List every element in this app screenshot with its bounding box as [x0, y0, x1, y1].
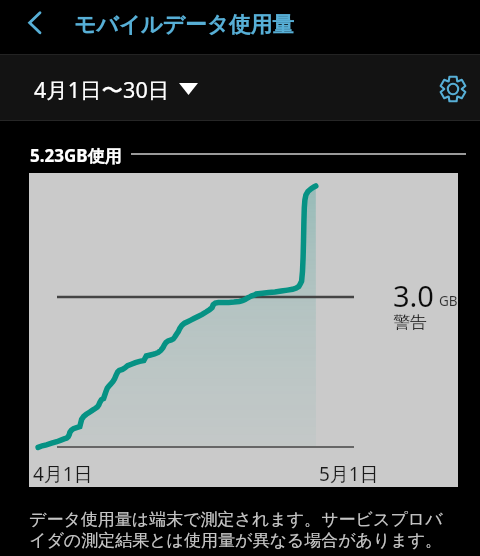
staticText: GB: [439, 292, 458, 310]
staticText: データ使用量は端末で測定されます。サービスプロバイダの測定結果とは使用量が異なる…: [29, 509, 457, 551]
staticText: 警告: [393, 312, 427, 333]
staticText: 5月1日: [319, 461, 379, 487]
staticText: モバイルデータ使用量: [74, 11, 294, 38]
button[interactable]: 4月1日〜30日: [34, 75, 198, 104]
staticText: 4月1日: [33, 461, 93, 487]
button[interactable]: Settings: [433, 69, 473, 109]
staticText: 3.0: [393, 276, 434, 315]
staticText: 5.23GB使用: [30, 144, 122, 167]
staticText: 4月1日〜30日: [34, 75, 170, 104]
button[interactable]: Back: [18, 5, 52, 39]
